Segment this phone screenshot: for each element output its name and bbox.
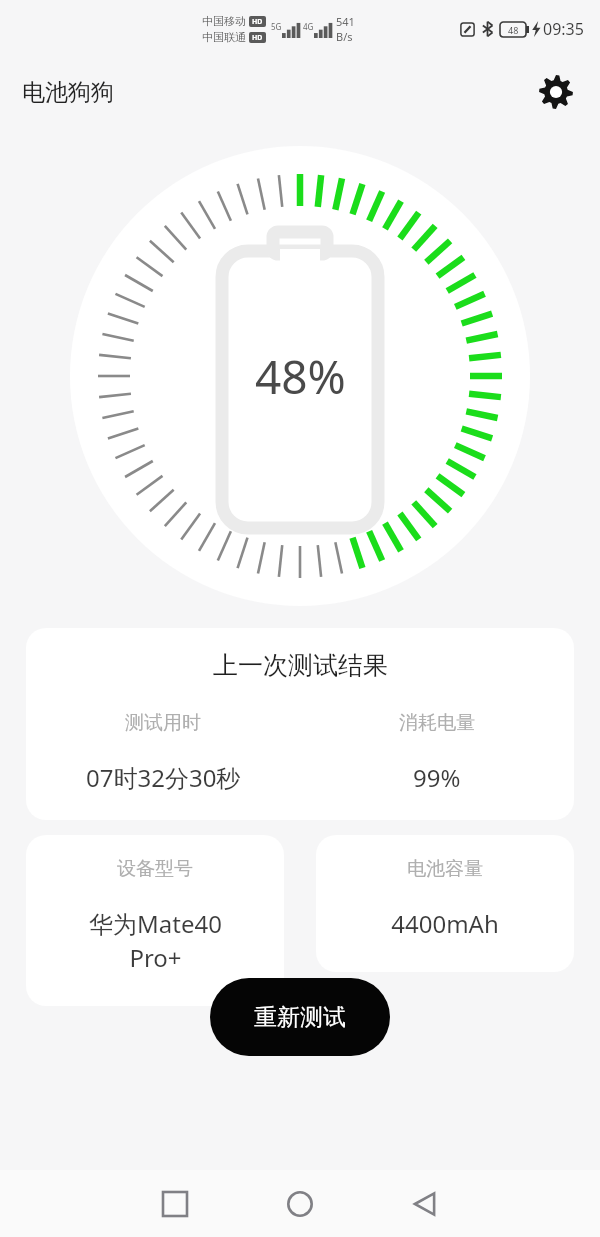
button[interactable]: Settings — [532, 68, 580, 116]
staticText: 中国联通 — [202, 30, 246, 44]
staticText: 上一次测试结果 — [213, 650, 388, 681]
button[interactable]: 上一次测试结果 — [26, 628, 574, 820]
staticText: 重新测试 — [254, 1003, 346, 1032]
staticText: 4400mAh — [391, 907, 499, 940]
staticText: 测试用时 — [125, 711, 201, 735]
button[interactable]: Recent apps — [144, 1173, 206, 1235]
staticText: 华为Mate40 Pro+ — [89, 907, 222, 974]
staticText: 中国移动 — [202, 14, 246, 28]
staticText: 电池狗狗 — [22, 78, 114, 107]
staticText: 99% — [413, 761, 461, 794]
staticText: HD — [252, 33, 263, 43]
button[interactable]: 重新测试 — [210, 978, 390, 1056]
staticText: 设备型号 — [117, 857, 193, 881]
button[interactable]: 设备型号 — [26, 835, 284, 1006]
button[interactable]: Back — [394, 1173, 456, 1235]
staticText: 48% — [255, 345, 346, 408]
staticText: HD — [252, 17, 263, 27]
staticText: 07时32分30秒 — [86, 761, 241, 794]
staticText: B/s — [336, 29, 353, 44]
staticText: 48 — [508, 24, 519, 36]
staticText: 5G — [271, 21, 282, 32]
staticText: 4G — [303, 21, 314, 32]
staticText: 09:35 — [543, 18, 584, 40]
button[interactable]: Home — [269, 1173, 331, 1235]
button[interactable]: 电池容量 — [316, 835, 574, 972]
staticText: 电池容量 — [407, 857, 483, 881]
staticText: 541 — [336, 14, 355, 29]
staticText: 消耗电量 — [399, 711, 475, 735]
